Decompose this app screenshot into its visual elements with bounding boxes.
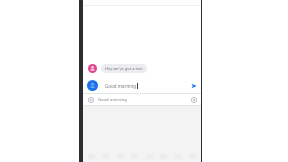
button[interactable]: Hey we've got a text [83,62,201,75]
staticText: Hey we've got a text [105,66,143,71]
button[interactable]: Send [188,80,199,91]
button[interactable]: Attachment [83,94,201,105]
button[interactable]: Good morning [101,80,188,91]
button[interactable]: Profile [87,80,98,91]
staticText: Good morning [98,97,127,103]
button[interactable]: Add [189,95,198,104]
other: Attachment [88,97,94,103]
staticText: Good morning [105,83,136,89]
